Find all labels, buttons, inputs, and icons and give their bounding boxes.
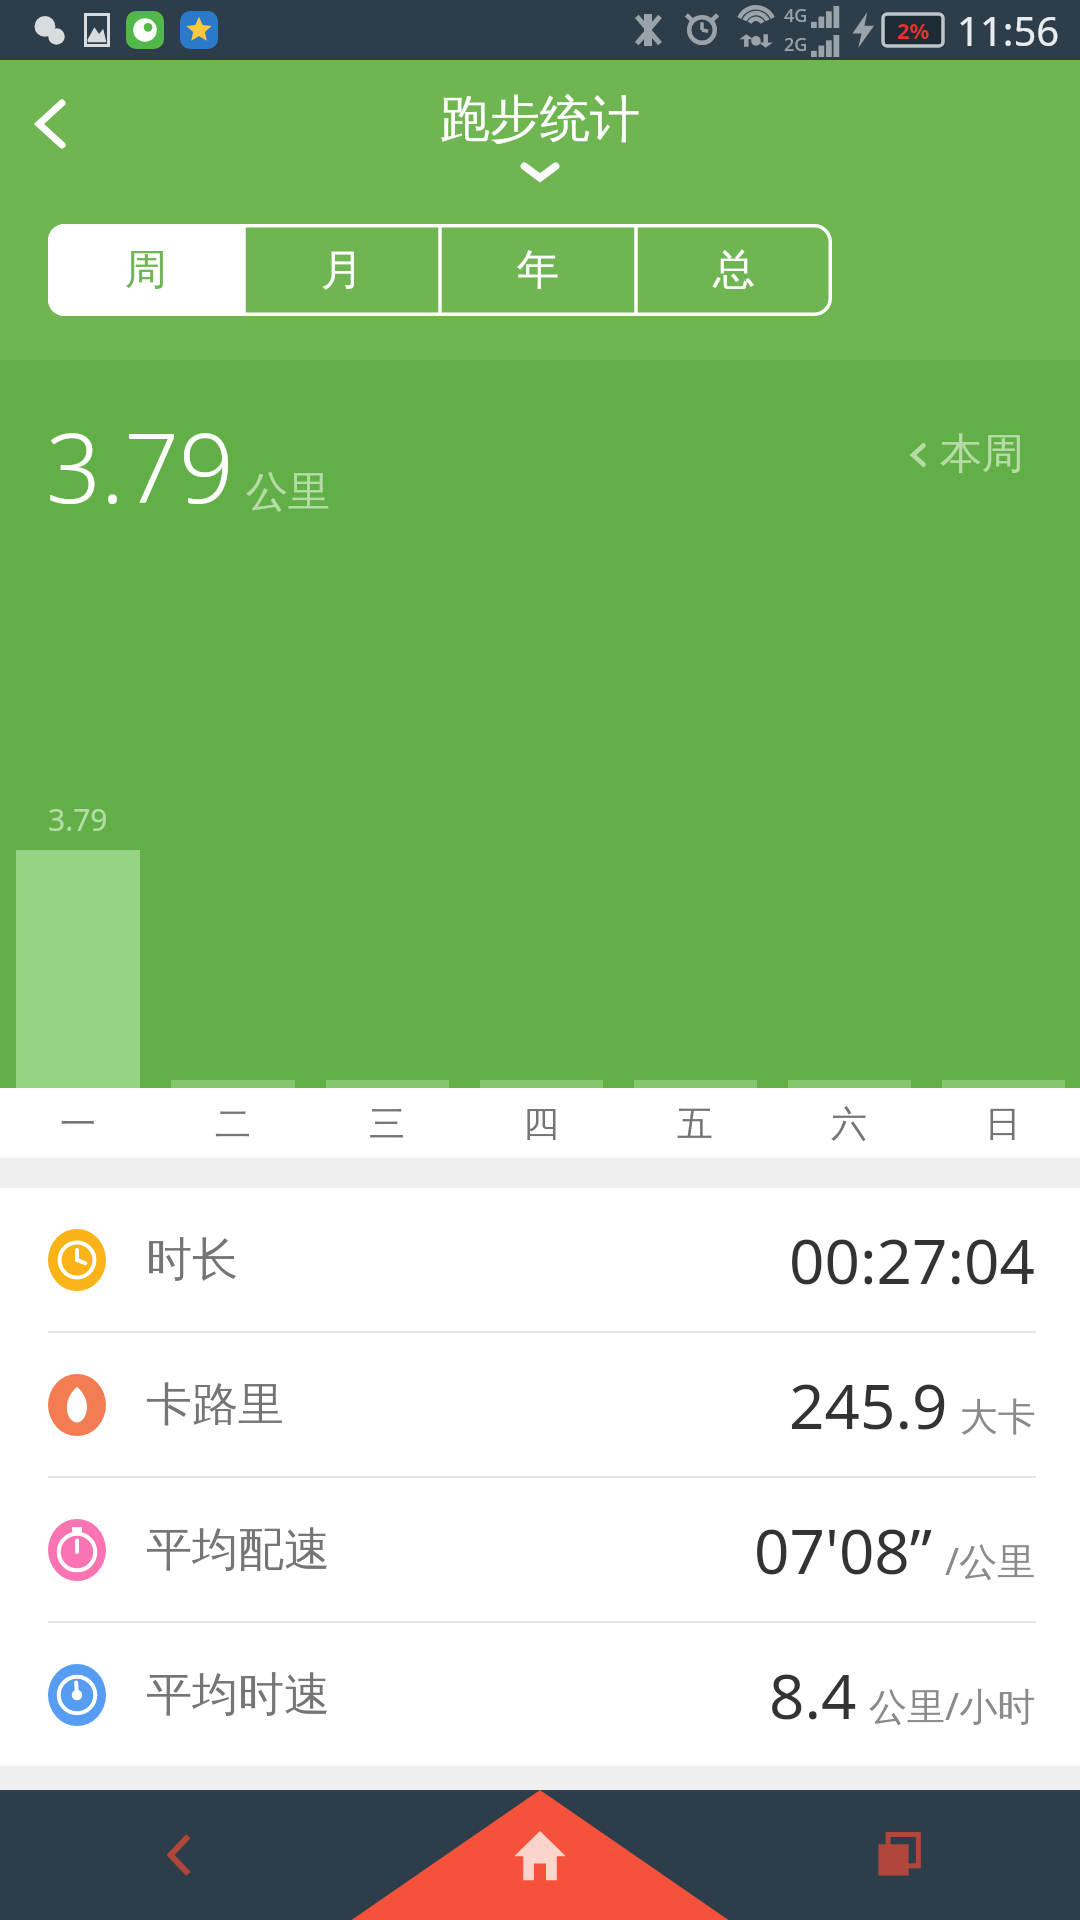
staticText: 07'08” [754,1508,933,1592]
staticText: 三 [369,1101,405,1146]
staticText: /公里 [945,1534,1036,1586]
staticText: 六 [831,1101,867,1146]
button[interactable]: 卡路里 [0,1333,1080,1476]
button[interactable]: 时长 [0,1188,1080,1331]
staticText: 公里 [246,466,330,519]
staticText: 11:56 [957,3,1060,57]
staticText: 245.9 [789,1363,948,1447]
staticText: 五 [677,1101,713,1146]
button[interactable]: Recent apps [720,1790,1080,1920]
button[interactable]: 周 [48,224,244,316]
staticText: 跑步统计 [440,88,640,151]
staticText: 时长 [146,1231,238,1289]
staticText: 一 [60,1101,96,1146]
staticText: 8.4 [769,1653,857,1737]
staticText: 平均配速 [146,1521,330,1579]
button[interactable]: 年 [440,224,636,316]
staticText: 2% [897,15,930,45]
staticText: 年 [517,244,559,297]
button[interactable]: 月 [244,224,440,316]
staticText: 3.79 [46,400,234,531]
staticText: 卡路里 [146,1376,284,1434]
staticText: 4G [784,3,808,28]
staticText: 00:27:04 [789,1218,1036,1302]
button[interactable]: 平均配速 [0,1478,1080,1621]
staticText: 公里/小时 [869,1679,1036,1731]
staticText: 大卡 [960,1393,1036,1441]
button[interactable]: 本周 [904,428,1024,481]
staticText: 本周 [940,428,1024,481]
staticText: 四 [523,1101,559,1146]
button[interactable]: Home [360,1790,720,1920]
staticText: 3.79 [48,799,108,840]
button[interactable]: Expand [508,155,572,189]
button[interactable]: 平均时速 [0,1623,1080,1766]
staticText: 月 [321,244,363,297]
button[interactable]: 总 [636,224,832,316]
staticText: 平均时速 [146,1666,330,1724]
staticText: 周 [125,244,167,297]
staticText: 日 [985,1101,1021,1146]
button[interactable]: Back [0,1790,360,1920]
staticText: 总 [713,244,755,297]
staticText: 二 [215,1101,251,1146]
button[interactable]: Back [10,82,94,166]
staticText: 2G [784,32,808,57]
